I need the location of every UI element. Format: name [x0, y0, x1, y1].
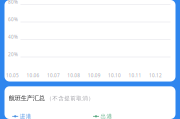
staticText: 10.05	[6, 72, 19, 79]
staticText: 10.09	[88, 72, 101, 79]
staticText: 10.12	[149, 72, 162, 79]
staticText: 10.10	[108, 72, 121, 79]
staticText: 10.08	[67, 72, 80, 79]
staticText: 40%	[8, 34, 18, 40]
staticText: 10.07	[47, 72, 60, 79]
staticText: 航班生产汇总	[9, 94, 45, 102]
staticText: 出港	[100, 113, 112, 119]
staticText: 10.06	[26, 72, 39, 79]
staticText: 20%	[8, 51, 18, 58]
staticText: 80%	[8, 0, 18, 5]
staticText: 60%	[8, 16, 18, 23]
staticText: 进港	[20, 113, 32, 119]
staticText: 10.11	[128, 72, 141, 79]
staticText: （不含提前取消）	[46, 95, 94, 102]
